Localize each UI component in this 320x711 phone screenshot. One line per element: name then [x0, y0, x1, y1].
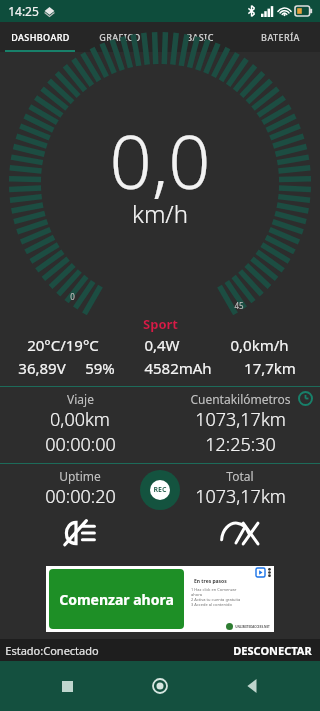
staticText: BATERÍA: [261, 31, 300, 43]
button[interactable]: DASHBOARD: [0, 22, 80, 52]
staticText: 0,0km/h: [230, 335, 289, 355]
staticText: 12:25:30: [205, 432, 276, 457]
staticText: 17,7km: [244, 358, 296, 378]
button[interactable]: Back: [238, 671, 268, 701]
staticText: 00:00:00: [45, 432, 116, 457]
staticText: 59%: [85, 358, 115, 378]
staticText: Sport: [143, 315, 178, 333]
button[interactable]: BASIC: [160, 22, 240, 52]
button[interactable]: Recent apps: [52, 671, 82, 701]
staticText: En tres pasos: [194, 578, 272, 585]
staticText: 0,4W: [144, 335, 180, 355]
staticText: 0,0: [109, 110, 211, 211]
staticText: 00:00:20: [45, 484, 116, 509]
staticText: Comenzar ahora: [59, 590, 174, 609]
staticText: 36,89V: [18, 358, 66, 378]
staticText: 2 Activa tu cuenta gratuita: [191, 597, 272, 602]
button[interactable]: History: [296, 389, 314, 407]
staticText: UNLIMITEDACCESS.NET: [235, 625, 270, 629]
staticText: GRAFICO: [99, 31, 141, 43]
staticText: 1073,17km: [195, 407, 286, 432]
staticText: DASHBOARD: [11, 31, 70, 43]
staticText: 1 Haz click en Comenzar ahora: [191, 587, 272, 597]
staticText: 20°C/19°C: [27, 335, 99, 355]
staticText: Uptime: [59, 468, 101, 484]
staticText: REC: [153, 485, 167, 495]
staticText: km/h: [132, 197, 188, 230]
staticText: 4582mAh: [144, 358, 212, 378]
staticText: BASIC: [186, 31, 214, 43]
button[interactable]: Home: [145, 671, 175, 701]
button[interactable]: BATERÍA: [240, 22, 320, 52]
button[interactable]: Cruise control off: [160, 513, 320, 553]
staticText: Cuentakilómetros: [190, 391, 291, 407]
staticText: 45: [234, 300, 244, 311]
staticText: Estado:Conectado: [5, 643, 99, 658]
staticText: 14:25: [8, 3, 39, 19]
button[interactable]: Lights off: [0, 513, 160, 553]
button[interactable]: DESCONECTAR: [230, 643, 315, 658]
button[interactable]: Record: [140, 470, 180, 510]
staticText: 0,00km: [50, 407, 110, 432]
staticText: 0: [70, 291, 75, 302]
staticText: DESCONECTAR: [233, 643, 312, 658]
staticText: Viaje: [67, 391, 94, 407]
staticText: 1073,17km: [195, 484, 286, 509]
button[interactable]: Comenzar ahora: [46, 566, 274, 632]
staticText: Total: [226, 468, 254, 484]
button[interactable]: GRAFICO: [80, 22, 160, 52]
staticText: 3 Accede al contenido: [191, 602, 272, 607]
